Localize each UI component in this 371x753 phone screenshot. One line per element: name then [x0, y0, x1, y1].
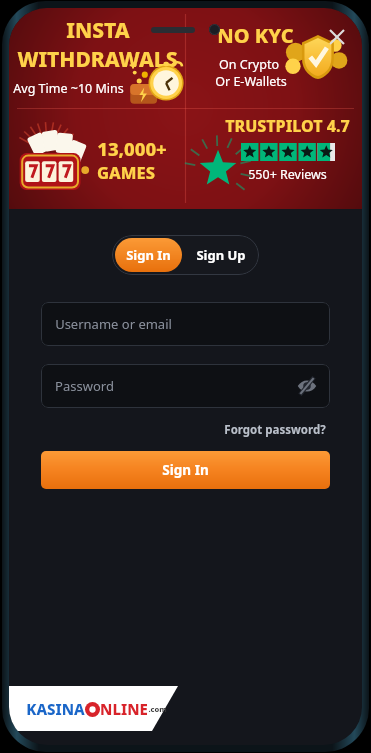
button[interactable]: Sign In	[41, 451, 330, 489]
staticText: INSTA	[66, 16, 130, 45]
button[interactable]: Password	[41, 364, 330, 408]
staticText: GAMES	[97, 161, 155, 183]
button[interactable]: Sign In	[115, 238, 182, 272]
staticText: WITHDRAWALS	[17, 45, 178, 74]
staticText: Or E-Wallets	[215, 73, 287, 90]
button[interactable]: Forgot password?	[220, 418, 330, 442]
button[interactable]: KASINA	[9, 686, 204, 731]
staticText: Username or email	[55, 315, 172, 333]
staticText: Sign Up	[196, 246, 246, 264]
staticText: KASINA	[26, 699, 85, 719]
staticText: On Crypto	[219, 56, 279, 73]
staticText: Sign In	[162, 461, 209, 479]
staticText: TRUSTPILOT 4.7	[225, 115, 350, 137]
staticText: 13,000+	[97, 136, 167, 161]
staticText: Password	[55, 377, 114, 395]
button[interactable]: Show password	[296, 375, 318, 397]
staticText: NLINE	[100, 699, 148, 719]
staticText: Sign In	[126, 246, 171, 264]
staticText: .com	[148, 704, 167, 714]
staticText: Forgot password?	[224, 422, 326, 438]
button[interactable]: Username or email	[41, 302, 330, 346]
button[interactable]: Sign Up	[185, 238, 256, 272]
staticText: NO KYC	[217, 22, 294, 49]
staticText: Avg Time ~10 Mins	[13, 80, 124, 97]
button[interactable]: Close	[322, 22, 352, 52]
staticText: 550+ Reviews	[248, 166, 327, 183]
